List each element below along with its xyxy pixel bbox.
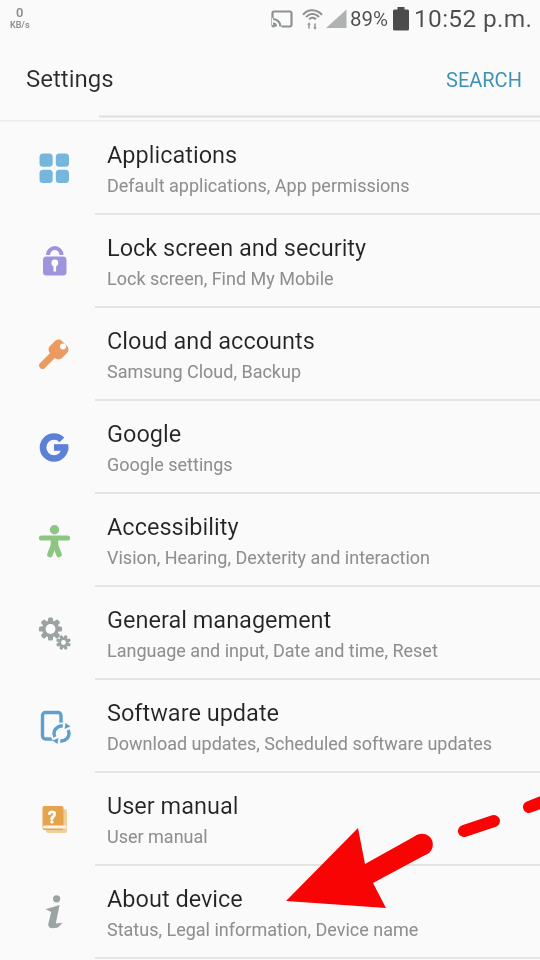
staticText: User manual <box>107 792 239 820</box>
staticText: KB/s <box>10 20 30 31</box>
staticText: Software update <box>107 699 280 727</box>
button[interactable]: ? <box>0 773 540 866</box>
staticText: User manual <box>107 826 208 847</box>
staticText: 10:52 p.m. <box>414 4 533 33</box>
button[interactable]: General management <box>0 587 540 680</box>
staticText: ? <box>48 807 57 827</box>
button[interactable]: Applications <box>0 122 540 215</box>
staticText: Vision, Hearing, Dexterity and interacti… <box>107 547 431 568</box>
staticText: About device <box>107 885 243 913</box>
staticText: Lock screen, Find My Mobile <box>107 268 334 289</box>
staticText: SEARCH <box>446 68 522 91</box>
staticText: Samsung Cloud, Backup <box>107 361 302 382</box>
staticText: Accessibility <box>107 513 239 541</box>
staticText: Status, Legal information, Device name <box>107 919 419 940</box>
button[interactable]: SEARCH <box>436 58 532 101</box>
staticText: Applications <box>107 141 238 169</box>
button[interactable]: Google <box>0 401 540 494</box>
staticText: Download updates, Scheduled software upd… <box>107 733 493 754</box>
staticText: Default applications, App permissions <box>107 175 410 196</box>
button[interactable]: Software update <box>0 680 540 773</box>
staticText: Google settings <box>107 454 233 475</box>
staticText: Settings <box>26 65 114 93</box>
staticText: General management <box>107 606 332 634</box>
button[interactable]: Accessibility <box>0 494 540 587</box>
staticText: Language and input, Date and time, Reset <box>107 640 438 661</box>
staticText: Google <box>107 420 182 448</box>
staticText: 0 <box>16 5 24 20</box>
staticText: Lock screen and security <box>107 234 367 262</box>
button[interactable]: Lock screen and security <box>0 215 540 308</box>
staticText: 89% <box>350 7 389 31</box>
button[interactable]: About device <box>0 866 540 959</box>
staticText: Cloud and accounts <box>107 327 315 355</box>
button[interactable]: Cloud and accounts <box>0 308 540 401</box>
